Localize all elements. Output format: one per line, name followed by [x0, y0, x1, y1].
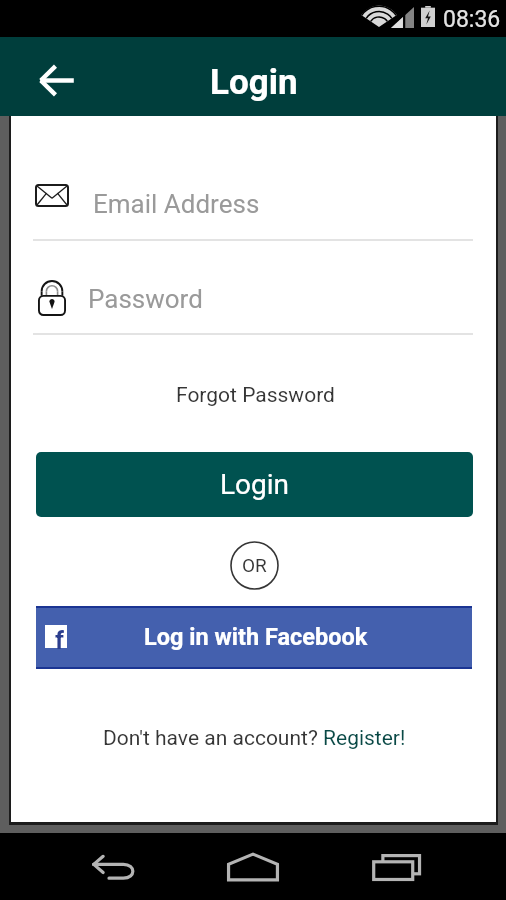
button[interactable]: Login [36, 452, 473, 517]
button[interactable]: Back [78, 842, 148, 892]
staticText: 08:36 [443, 6, 501, 33]
button[interactable]: Back [17, 50, 97, 110]
staticText: Email Address [93, 189, 260, 219]
staticText: Login [210, 62, 298, 103]
staticText: Password [88, 284, 203, 314]
button[interactable]: Forgot Password [163, 377, 347, 413]
button[interactable]: Log in with Facebook [36, 608, 472, 667]
staticText: Forgot Password [176, 383, 335, 408]
staticText: Login [220, 468, 290, 501]
button[interactable]: Don't have an account? Register! [99, 721, 409, 755]
staticText: Don't have an account? Register! [103, 726, 406, 751]
staticText: OR [242, 554, 267, 576]
staticText: f [55, 626, 64, 649]
button[interactable]: Home [218, 842, 288, 892]
staticText: Log in with Facebook [144, 623, 368, 651]
button[interactable]: Recent apps [361, 842, 431, 892]
